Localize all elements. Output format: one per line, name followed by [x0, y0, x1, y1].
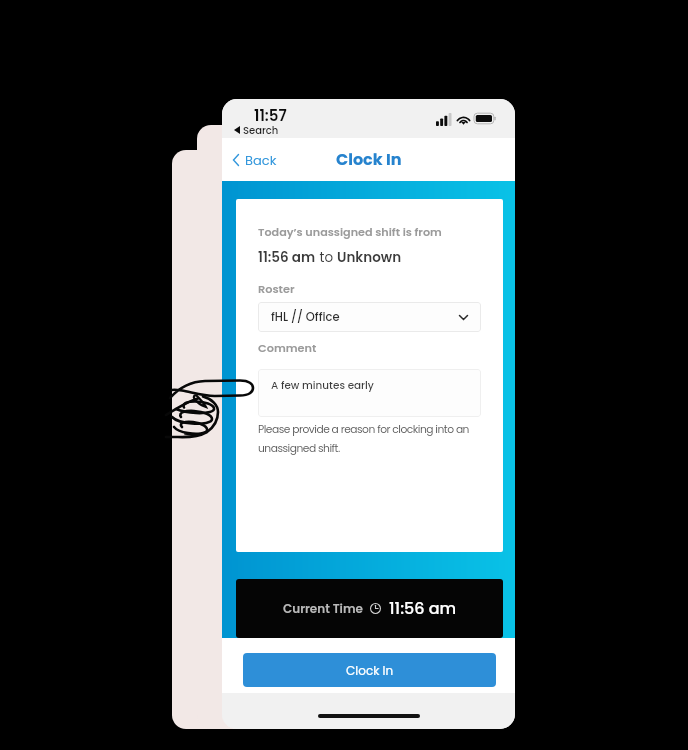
staticText: 11:57: [254, 105, 287, 126]
staticText: Roster: [258, 281, 295, 297]
staticText: 11:56 am: [389, 597, 457, 619]
staticText: Search: [243, 123, 279, 137]
staticText: Current Time: [283, 600, 363, 617]
staticText: Today’s unassigned shift is from: [258, 224, 442, 240]
staticText: Clock In: [346, 662, 394, 679]
staticText: to: [316, 248, 337, 267]
staticText: Clock In: [336, 148, 402, 170]
staticText: fHL // Office: [271, 309, 340, 325]
staticText: Please provide a reason for clocking int…: [258, 422, 481, 456]
staticText: 11:56 am: [258, 248, 316, 267]
staticText: Back: [245, 151, 277, 169]
staticText: Unknown: [337, 248, 402, 267]
staticText: A few minutes early: [271, 378, 374, 393]
staticText: Comment: [258, 340, 317, 356]
button[interactable]: Clock In: [243, 653, 496, 687]
button[interactable]: A few minutes early: [258, 369, 481, 417]
button[interactable]: fHL // Office: [258, 302, 481, 332]
button[interactable]: Back: [222, 138, 285, 181]
